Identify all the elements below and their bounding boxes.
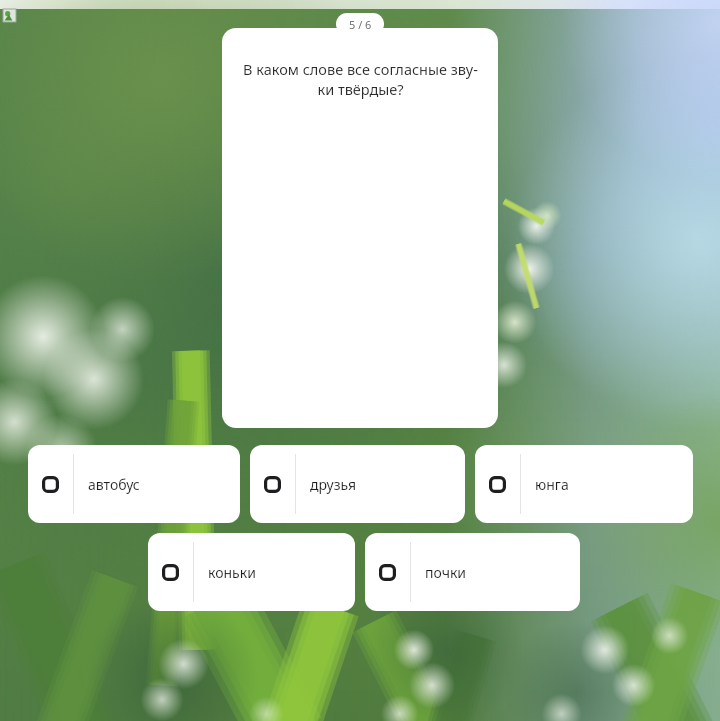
staticText: коньки [208,563,256,582]
staticText: В каком слове все согласные зву- ки твёр… [243,59,478,100]
button[interactable]: друзья [250,445,465,523]
staticText: почки [425,563,467,582]
button[interactable]: коньки [148,533,355,611]
staticText: автобус [88,475,140,494]
button[interactable]: почки [365,533,580,611]
button[interactable]: автобус [28,445,240,523]
button[interactable]: юнга [475,445,693,523]
staticText: юнга [535,475,569,494]
staticText: друзья [310,475,356,494]
staticText: 5 / 6 [349,17,372,32]
